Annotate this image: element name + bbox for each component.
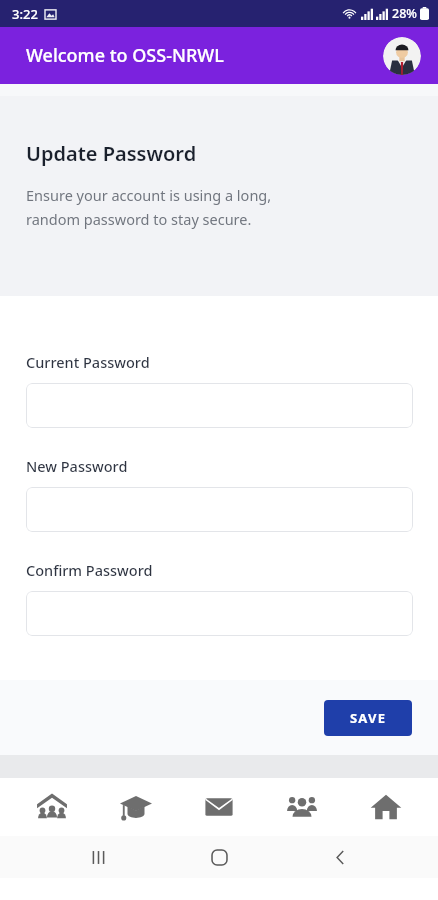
button[interactable]: Family <box>21 778 83 836</box>
staticText: Confirm Password <box>26 560 153 580</box>
button[interactable]: Home <box>196 836 242 878</box>
staticText: Update Password <box>26 140 197 167</box>
staticText: 28% <box>392 5 417 22</box>
button[interactable]: Recent apps <box>75 836 121 878</box>
button[interactable]: SAVE <box>324 700 412 736</box>
staticText: Current Password <box>26 352 150 372</box>
staticText: Welcome to OSS-NRWL <box>26 43 224 68</box>
staticText: Ensure your account is using a long, ran… <box>26 185 272 229</box>
button[interactable]: Home <box>355 778 417 836</box>
staticText: New Password <box>26 456 128 476</box>
button[interactable]: Education <box>105 778 167 836</box>
staticText: 3:22 <box>12 5 38 23</box>
button[interactable]: Profile <box>383 37 421 75</box>
button[interactable] <box>26 591 413 636</box>
button[interactable]: Back <box>317 836 363 878</box>
button[interactable] <box>26 383 413 428</box>
button[interactable]: Groups <box>271 778 333 836</box>
button[interactable]: Messages <box>188 778 250 836</box>
button[interactable] <box>26 487 413 532</box>
staticText: SAVE <box>350 709 387 727</box>
